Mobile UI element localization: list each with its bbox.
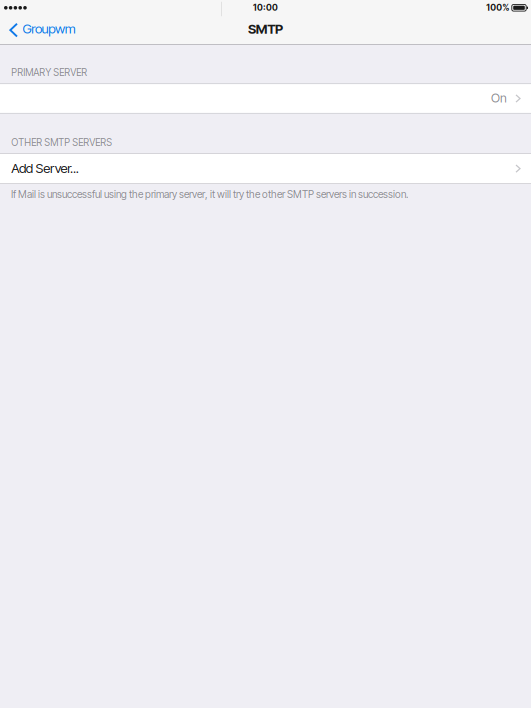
button[interactable]: Groupwm [0,18,82,45]
button[interactable]: Add Server... [0,153,531,184]
staticText: If Mail is unsuccessful using the primar… [11,188,408,201]
staticText: SMTP [248,21,283,37]
staticText: OTHER SMTP SERVERS [11,136,112,148]
staticText: Add Server... [11,160,79,176]
button[interactable]: Primary Server, On [0,83,531,113]
staticText: PRIMARY SERVER [11,67,87,78]
staticText: Groupwm [22,21,76,37]
staticText: 100% [486,2,509,13]
staticText: On [491,90,507,106]
staticText: 10:00 [253,2,278,13]
